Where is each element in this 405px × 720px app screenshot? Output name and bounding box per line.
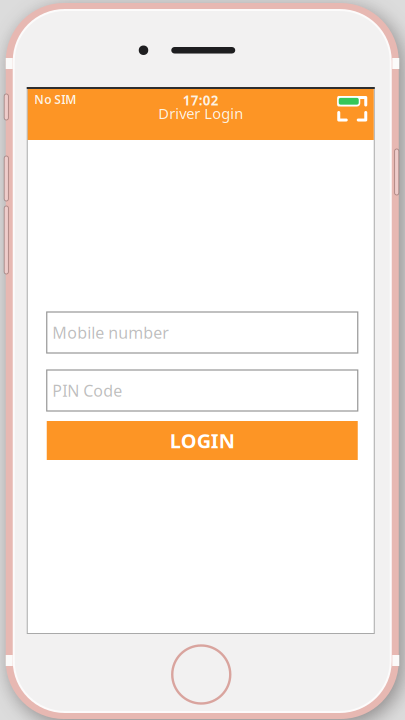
staticText: Driver Login xyxy=(158,103,243,123)
staticText: 17:02 xyxy=(183,91,219,109)
button[interactable]: LOGIN xyxy=(47,421,358,460)
staticText: No SIM xyxy=(34,91,76,107)
staticText: LOGIN xyxy=(170,427,235,454)
staticText: Mobile number xyxy=(52,322,169,343)
staticText: PIN Code xyxy=(52,380,122,401)
button[interactable]: PIN Code xyxy=(47,370,358,411)
button[interactable]: Mobile number xyxy=(47,312,358,353)
